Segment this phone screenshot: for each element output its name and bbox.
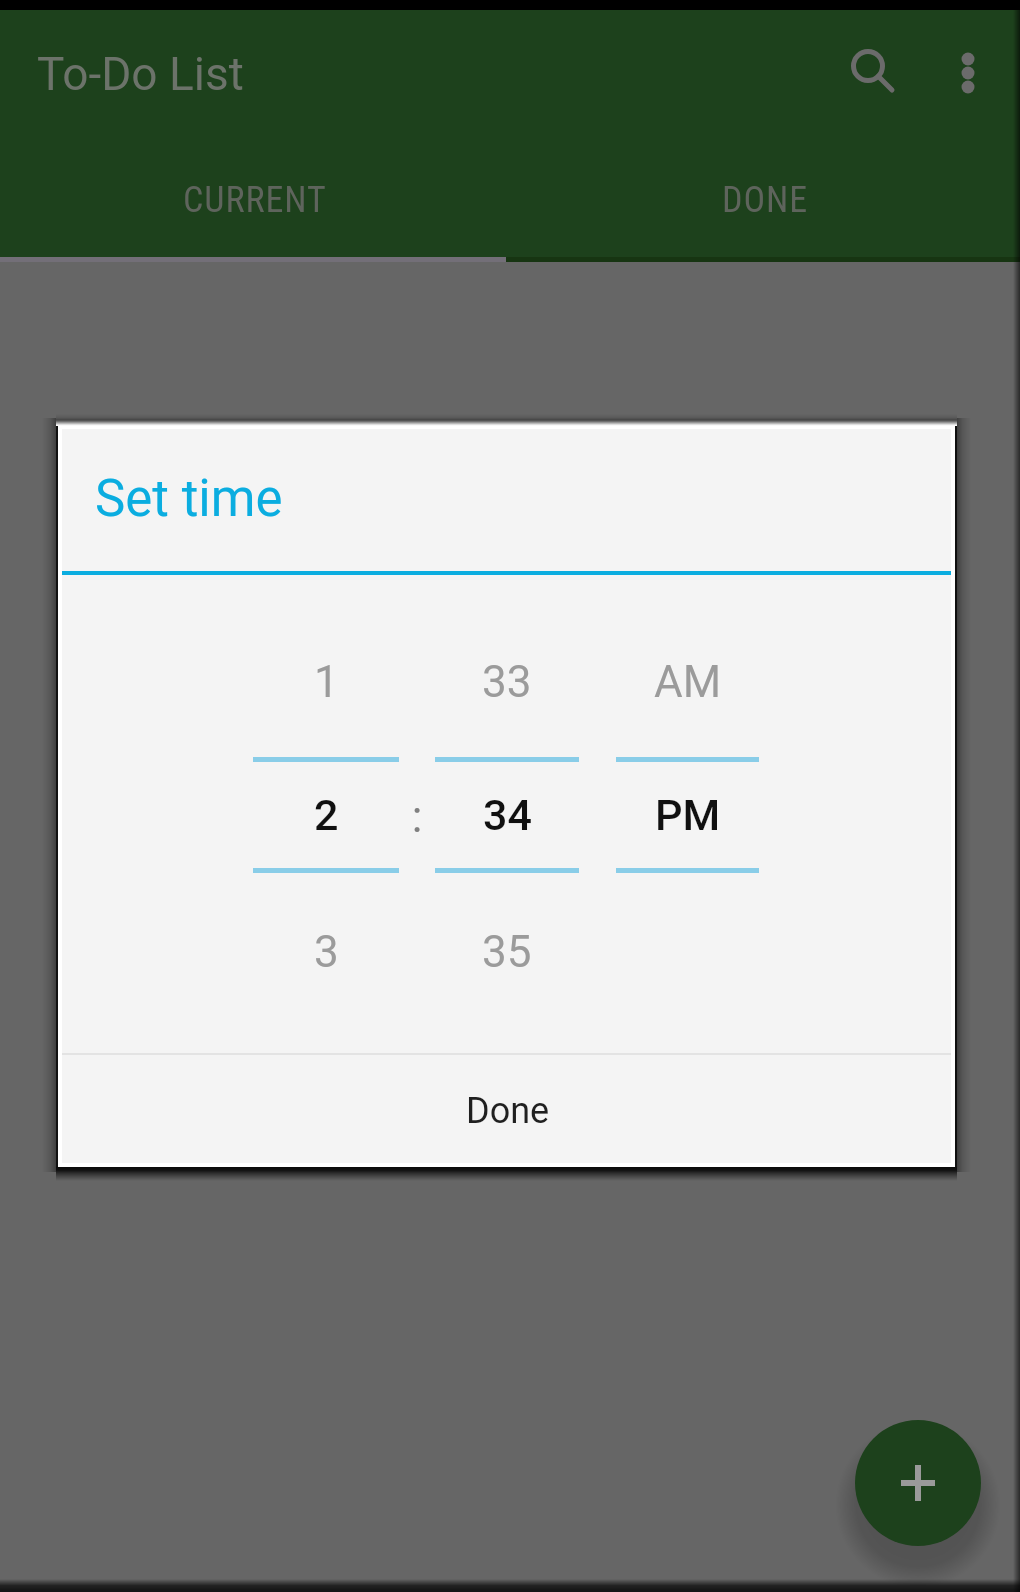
staticText: DONE — [722, 179, 808, 221]
button[interactable]: Done — [62, 1055, 951, 1162]
staticText: 35 — [482, 926, 532, 978]
staticText: 1 — [314, 656, 339, 708]
button[interactable]: More options — [920, 25, 1016, 121]
staticText: 3 — [314, 926, 339, 978]
staticText: 2 — [314, 790, 339, 840]
staticText: AM — [654, 656, 722, 708]
staticText: CURRENT — [183, 179, 327, 221]
staticText: Set time — [95, 469, 283, 529]
button[interactable]: DONE — [510, 136, 1020, 256]
button[interactable]: Search — [825, 24, 921, 120]
button[interactable]: Add task — [855, 1420, 981, 1546]
staticText: 34 — [483, 790, 532, 840]
staticText: To-Do List — [37, 47, 244, 101]
staticText: 33 — [482, 656, 532, 708]
staticText: PM — [655, 790, 721, 840]
staticText: Done — [466, 1090, 550, 1132]
button[interactable]: CURRENT — [0, 136, 510, 256]
staticText: : — [404, 791, 430, 843]
